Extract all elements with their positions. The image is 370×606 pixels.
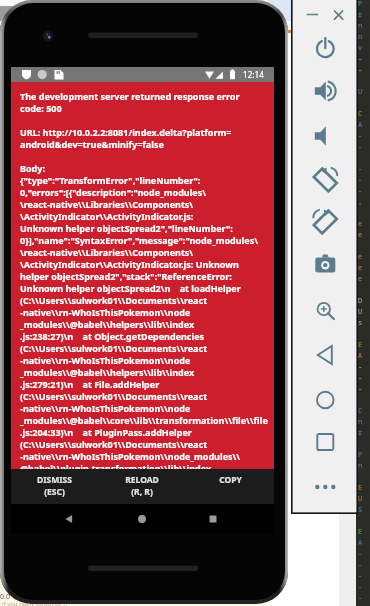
button[interactable]: RELOAD xyxy=(98,469,186,504)
button[interactable]: Recent apps xyxy=(201,507,225,531)
staticText: - xyxy=(358,175,363,185)
staticText: (R, R) xyxy=(131,486,153,498)
staticText: (ESC) xyxy=(44,486,65,498)
staticText: (C:\\Users\\sulwork01\\Documents\\react xyxy=(20,390,208,402)
staticText: _modules\\@babel\\core\\lib\\transformat… xyxy=(20,414,268,426)
staticText: e xyxy=(358,219,363,229)
staticText: .js:279:21)\n at File.addHelper xyxy=(20,378,160,390)
button[interactable]: Back xyxy=(57,507,81,531)
staticText: helper objectSpread2","stack":"Reference… xyxy=(20,270,232,282)
staticText: e xyxy=(358,274,363,284)
staticText: - xyxy=(358,582,363,592)
staticText: A xyxy=(358,538,363,548)
staticText: COPY xyxy=(219,474,242,486)
staticText: A xyxy=(358,120,363,130)
staticText: P xyxy=(358,0,363,9)
staticText: DISMISS xyxy=(37,474,72,486)
button[interactable]: COPY xyxy=(186,469,274,504)
staticText: e xyxy=(358,252,363,262)
button[interactable]: Home xyxy=(130,507,154,531)
staticText: -native\\rn-WhoIsThisPokemon\\node xyxy=(20,306,191,318)
staticText: A xyxy=(358,351,363,361)
staticText: - xyxy=(358,373,363,383)
staticText: n xyxy=(358,21,363,31)
staticText: 0}],"name":"SyntaxError","message":"node… xyxy=(20,234,258,246)
staticText: - xyxy=(358,186,363,196)
staticText: Unknown helper objectSpread2\n at loadHe… xyxy=(20,282,241,294)
button[interactable]: DISMISS xyxy=(11,469,98,504)
staticText: -native\\rn-WhoIsThisPokemon\\node xyxy=(20,354,191,366)
staticText: E xyxy=(358,527,363,537)
staticText: - xyxy=(358,131,363,141)
staticText: android&dev=true&minify=false xyxy=(20,138,164,150)
staticText: -native\\rn-WhoIsThisPokemon\\node xyxy=(20,402,191,414)
staticText: S xyxy=(358,505,363,515)
staticText: 12:14 xyxy=(243,69,264,80)
staticText: (C:\\Users\\sulwork01\\Documents\\react xyxy=(20,342,208,354)
staticText: 0.0 xyxy=(0,592,10,602)
staticText: U xyxy=(358,307,363,317)
staticText: E xyxy=(358,483,363,493)
staticText: r xyxy=(358,10,363,20)
staticText: n xyxy=(358,417,363,427)
staticText: e xyxy=(358,230,363,240)
staticText: \ActivityIndicator\\ActivityIndicator.js… xyxy=(20,258,239,270)
staticText: n xyxy=(358,461,363,471)
staticText: - xyxy=(358,65,363,75)
staticText: D xyxy=(358,296,363,306)
staticText: s xyxy=(358,318,363,328)
staticText: The development server returned response… xyxy=(20,90,240,102)
staticText: (C:\\Users\\sulwork01\\Documents\\react xyxy=(20,438,208,450)
staticText: @babel\\plugin-transformation\\lib\\inde… xyxy=(20,462,212,474)
staticText: Body: xyxy=(20,162,45,174)
staticText: -native\\rn-WhoIsThisPokemon\\node_modul… xyxy=(20,450,241,462)
staticText: Unknown helper objectSpread2","lineNumbe… xyxy=(20,222,233,234)
staticText: r xyxy=(358,428,363,438)
staticText: , xyxy=(358,197,363,207)
staticText: - xyxy=(358,384,363,394)
staticText: C xyxy=(358,406,363,416)
staticText: RELOAD xyxy=(125,474,159,486)
staticText: n xyxy=(358,32,363,42)
staticText: P xyxy=(358,450,363,460)
staticText: - xyxy=(358,362,363,372)
staticText: .js:204:33)\n at PluginPass.addHelper xyxy=(20,426,192,438)
staticText: C xyxy=(358,109,363,119)
staticText: U xyxy=(358,494,363,504)
staticText: \react-native\\Libraries\\Components\ xyxy=(20,198,194,210)
staticText: \ActivityIndicator\\ActivityIndicator.js… xyxy=(20,210,194,222)
staticText: - xyxy=(358,549,363,559)
staticText: - xyxy=(358,571,363,581)
staticText: e xyxy=(358,263,363,273)
staticText: - xyxy=(358,560,363,570)
staticText: if you really forgot to ... xyxy=(2,600,68,606)
staticText: 0,"errors":[{"description":"node_modules… xyxy=(20,186,206,198)
staticText: (C:\\Users\\sulwork01\\Documents\\react xyxy=(20,294,208,306)
staticText: code: 500 xyxy=(20,102,62,114)
staticText: _modules\\@babel\\helpers\\lib\\index xyxy=(20,366,195,378)
staticText: .js:238:27)\n at Object.getDependencies xyxy=(20,330,205,342)
staticText: _modules\\@babel\\helpers\\lib\\index xyxy=(20,318,195,330)
staticText: - xyxy=(358,54,363,64)
staticText: - xyxy=(358,164,363,174)
staticText: {"type":"TransformError","lineNumber": xyxy=(20,174,201,186)
staticText: s xyxy=(278,20,283,32)
staticText: v xyxy=(358,43,363,53)
staticText: URL: http://10.0.2.2:8081/index.delta?pl… xyxy=(20,126,232,138)
staticText: - xyxy=(358,142,363,152)
staticText: \react-native\\Libraries\\Components\ xyxy=(20,246,194,258)
staticText: E xyxy=(358,340,363,350)
staticText: - xyxy=(358,593,363,603)
staticText: U xyxy=(358,87,363,97)
